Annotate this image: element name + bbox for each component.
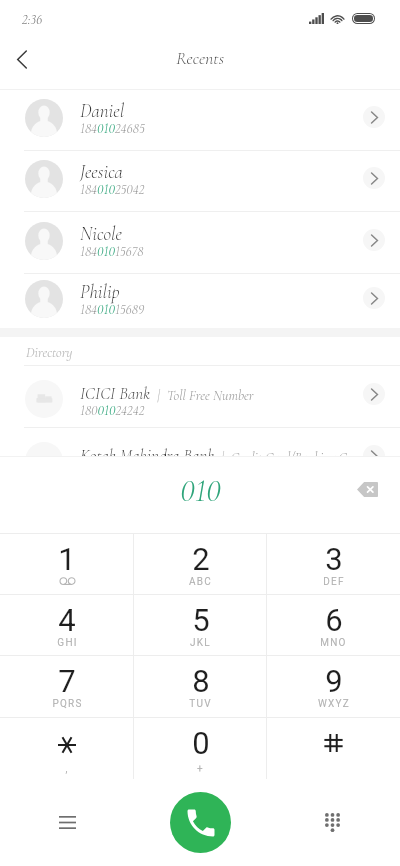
staticText: 18001024242 bbox=[80, 402, 145, 419]
staticText: , bbox=[65, 763, 69, 775]
button[interactable]: Open details bbox=[363, 383, 385, 405]
staticText: 8 bbox=[192, 663, 210, 699]
staticText: MNO bbox=[320, 637, 347, 649]
staticText: ICICI Bank bbox=[80, 383, 151, 404]
staticText: 18401025042 bbox=[80, 181, 145, 198]
staticText: TUV bbox=[189, 698, 212, 710]
staticText: Directory bbox=[26, 344, 73, 361]
staticText: ABC bbox=[189, 576, 212, 588]
staticText: 9 bbox=[325, 663, 343, 699]
staticText: JKL bbox=[190, 637, 211, 649]
button[interactable]: Dialpad bbox=[310, 800, 355, 845]
button[interactable] bbox=[267, 718, 400, 779]
staticText: | bbox=[215, 449, 231, 466]
button[interactable]: 0 bbox=[134, 718, 267, 779]
button[interactable]: , bbox=[0, 718, 134, 779]
staticText: Nicole bbox=[80, 222, 123, 245]
button[interactable]: Open details bbox=[363, 229, 385, 251]
button[interactable]: 6 bbox=[267, 595, 400, 655]
button[interactable]: Kotak Mahindra Bank bbox=[0, 428, 400, 489]
button[interactable]: Open details bbox=[363, 106, 385, 128]
staticText: 7 bbox=[58, 663, 76, 699]
button[interactable]: Open details bbox=[363, 445, 385, 467]
staticText: 5 bbox=[192, 602, 210, 638]
button[interactable]: Backspace bbox=[345, 467, 389, 511]
staticText: 6 bbox=[325, 602, 343, 638]
staticText: 18401015689 bbox=[80, 301, 145, 318]
button[interactable]: Open details bbox=[363, 287, 385, 309]
staticText: Daniel bbox=[80, 99, 125, 122]
button[interactable]: Back bbox=[2, 39, 42, 79]
staticText: 2 bbox=[192, 541, 210, 577]
button[interactable]: 4 bbox=[0, 595, 134, 655]
staticText: 2:36 bbox=[22, 11, 43, 28]
button[interactable]: Philip bbox=[0, 274, 400, 328]
button[interactable]: ICICI Bank bbox=[0, 366, 400, 427]
staticText: | bbox=[151, 387, 167, 404]
staticText: DEF bbox=[323, 576, 345, 588]
button[interactable]: 3 bbox=[267, 534, 400, 594]
button[interactable]: Daniel bbox=[0, 90, 400, 150]
staticText: Kotak Mahindra Bank bbox=[80, 445, 215, 466]
button[interactable]: Jeesica bbox=[0, 151, 400, 211]
button[interactable]: 1 bbox=[0, 534, 134, 594]
staticText: Credit Card/Banking C bbox=[231, 449, 348, 466]
staticText: 0 bbox=[192, 725, 210, 761]
button[interactable]: Menu bbox=[45, 800, 90, 845]
staticText: Toll Free Number bbox=[167, 387, 254, 404]
button[interactable]: 8 bbox=[134, 656, 267, 717]
staticText: 4 bbox=[58, 602, 76, 638]
button[interactable]: 9 bbox=[267, 656, 400, 717]
staticText: 18401024685 bbox=[80, 120, 145, 137]
staticText: WXYZ bbox=[318, 698, 350, 710]
button[interactable]: 2 bbox=[134, 534, 267, 594]
staticText: 010 bbox=[180, 471, 221, 510]
staticText: + bbox=[197, 763, 204, 775]
button[interactable]: Call bbox=[170, 792, 231, 853]
staticText: 18401015678 bbox=[80, 243, 144, 260]
staticText: PQRS bbox=[52, 698, 83, 710]
staticText: Recents bbox=[176, 47, 225, 69]
button[interactable]: 7 bbox=[0, 656, 134, 717]
button[interactable]: 5 bbox=[134, 595, 267, 655]
button[interactable]: Open details bbox=[363, 167, 385, 189]
staticText: GHI bbox=[57, 637, 78, 649]
staticText: 1 bbox=[58, 541, 76, 577]
button[interactable]: Nicole bbox=[0, 212, 400, 273]
staticText: Jeesica bbox=[80, 160, 123, 183]
staticText: 3 bbox=[325, 541, 343, 577]
staticText: Philip bbox=[80, 280, 120, 303]
